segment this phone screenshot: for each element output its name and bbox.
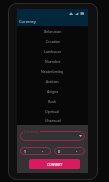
staticText: 1 [24,149,26,154]
other: Status icons [69,12,87,15]
staticText: Croatian [46,39,60,44]
staticText: 0 [58,149,60,154]
button[interactable]: Neuterbreitig [17,66,88,76]
button[interactable]: Croatian [17,36,88,46]
button[interactable]: Uhansual [17,116,88,125]
staticText: CONVERT [47,162,63,167]
button[interactable]: Nuembre [17,56,88,66]
button[interactable]: Currency selector [20,131,85,141]
staticText: Uhansual [45,118,61,123]
button[interactable]: Lamhouse [17,46,88,56]
staticText: Currency [24,129,39,134]
staticText: Openual [45,109,60,114]
staticText: Avigna [47,89,59,94]
staticText: Currency [19,19,36,24]
button[interactable]: Arabian [17,76,88,86]
staticText: Neuterbreitig [41,69,64,74]
button[interactable]: Rush [17,96,88,106]
staticText: • [42,149,44,154]
staticText: • [76,149,78,154]
button[interactable]: CONVERT [29,159,80,169]
button[interactable]: Avigna [17,86,88,96]
staticText: Lamhouse [44,49,62,54]
button[interactable]: Belarusian [17,26,88,36]
button[interactable]: Openual [17,106,88,116]
staticText: Rush [48,99,57,104]
staticText: Belarusian [44,29,62,34]
button[interactable]: 1 [20,147,51,155]
staticText: Arabian [46,79,59,84]
staticText: Nuembre [45,59,61,64]
button[interactable]: 0 [54,147,85,155]
